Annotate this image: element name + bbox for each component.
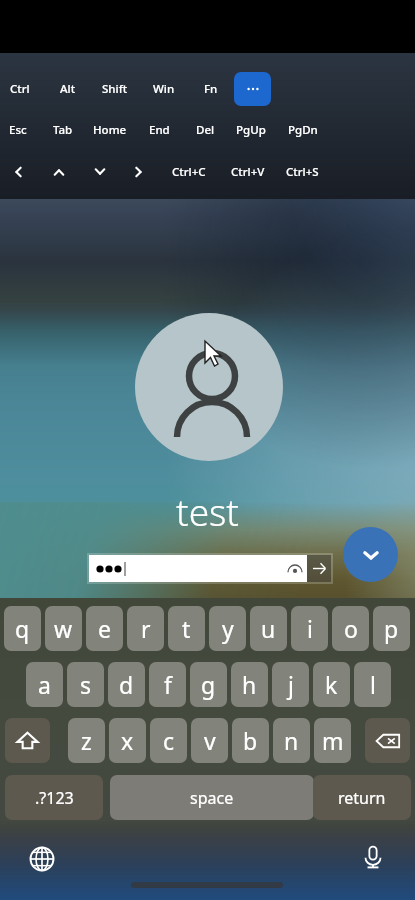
staticText: n [284,725,299,756]
button[interactable]: l [354,662,391,707]
button[interactable]: End [130,115,188,145]
button[interactable]: Left [3,157,33,187]
button[interactable]: i [291,606,328,651]
button[interactable]: Home [81,115,139,145]
button[interactable]: q [4,606,41,651]
staticText: o [344,613,358,644]
button[interactable]: Del [176,115,234,145]
button[interactable]: Down [85,157,115,187]
staticText: g [201,669,216,700]
button[interactable]: Ctrl+V [219,157,277,187]
button[interactable]: p [373,606,410,651]
button[interactable]: Ctrl [0,74,49,104]
button[interactable]: Fn [182,74,240,104]
button[interactable]: w [45,606,82,651]
button[interactable]: Submit [307,555,331,582]
staticText: p [384,613,399,644]
button[interactable]: c [150,718,187,763]
button[interactable]: h [231,662,268,707]
staticText: Ctrl [10,81,30,97]
button[interactable]: v [191,718,228,763]
button[interactable]: o [332,606,369,651]
staticText: Shift [102,81,128,97]
button[interactable]: k [313,662,350,707]
button[interactable]: j [272,662,309,707]
staticText: e [98,613,111,644]
staticText: q [15,613,30,644]
button[interactable]: space [110,775,314,820]
staticText: Esc [9,122,27,138]
staticText: z [81,725,92,756]
staticText: Home [93,122,127,138]
staticText: .?123 [35,787,74,809]
staticText: l [370,669,376,700]
staticText: v [204,725,216,756]
staticText: k [325,669,338,700]
button[interactable]: Up [44,157,74,187]
button[interactable]: r [127,606,164,651]
staticText: c [163,725,175,756]
staticText: f [164,669,172,700]
staticText: r [141,613,151,644]
staticText: return [338,787,386,809]
staticText: Fn [204,81,218,97]
button[interactable]: Submit [89,555,331,582]
button[interactable]: u [250,606,287,651]
button[interactable]: Win [135,74,193,104]
button[interactable]: d [108,662,145,707]
button[interactable]: a [26,662,63,707]
staticText: PgUp [236,122,266,138]
staticText: Ctrl+S [286,164,319,180]
staticText: y [222,613,234,644]
button[interactable]: Dictate [357,841,389,873]
button[interactable]: Shift [5,718,50,763]
button[interactable]: z [68,718,105,763]
button[interactable]: Ctrl+S [273,157,331,187]
staticText: u [261,613,276,644]
button[interactable]: b [232,718,269,763]
staticText: m [322,725,344,756]
button[interactable]: t [168,606,205,651]
staticText: t [182,613,191,644]
staticText: Alt [60,81,76,97]
button[interactable]: .?123 [5,775,103,820]
button[interactable]: More keys [234,72,271,106]
staticText: w [54,613,73,644]
button[interactable]: Hide keyboard [343,527,398,582]
staticText: b [243,725,258,756]
button[interactable]: Tab [34,115,92,145]
staticText: PgDn [288,122,318,138]
button[interactable]: m [314,718,351,763]
button[interactable]: e [86,606,123,651]
button[interactable]: Esc [0,115,47,145]
button[interactable]: Right [124,157,154,187]
staticText: Ctrl+V [231,164,265,180]
staticText: s [80,669,92,700]
button[interactable]: PgUp [222,115,280,145]
button[interactable]: g [190,662,227,707]
staticText: Del [196,122,215,138]
staticText: a [38,669,51,700]
button[interactable]: return [313,775,411,820]
button[interactable]: f [149,662,186,707]
staticText: test [0,486,415,536]
staticText: h [242,669,257,700]
staticText: Ctrl+C [172,164,206,180]
button[interactable]: Alt [39,74,97,104]
button[interactable]: n [273,718,310,763]
button[interactable]: PgDn [274,115,332,145]
button[interactable]: Shift [86,74,144,104]
staticText: Tab [53,122,73,138]
button[interactable]: s [67,662,104,707]
button[interactable]: Change keyboard [26,843,58,875]
staticText: x [121,725,134,756]
button[interactable]: y [209,606,246,651]
staticText: space [190,787,234,809]
staticText: i [307,613,313,644]
button[interactable]: Ctrl+C [160,157,218,187]
button[interactable]: Backspace [365,718,410,763]
staticText: Win [153,81,175,97]
staticText: End [149,122,170,138]
button[interactable]: x [109,718,146,763]
staticText: j [288,669,294,700]
